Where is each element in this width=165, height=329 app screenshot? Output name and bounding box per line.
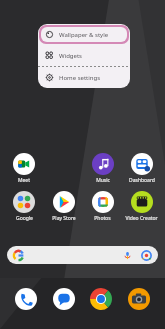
staticText: Dashboard bbox=[129, 177, 155, 184]
staticText: Wallpaper & style bbox=[59, 31, 109, 39]
button[interactable]: Dashboard bbox=[122, 153, 161, 184]
button[interactable]: Chrome bbox=[89, 287, 113, 311]
button[interactable]: Messages bbox=[52, 287, 76, 311]
button[interactable]: Wallpaper & style bbox=[38, 24, 130, 45]
button[interactable] bbox=[7, 246, 158, 264]
button[interactable]: Play Store bbox=[44, 191, 83, 222]
staticText: Video Creator bbox=[125, 215, 158, 222]
button[interactable]: Widgets bbox=[38, 45, 130, 66]
button[interactable]: Google bbox=[4, 191, 44, 222]
staticText: Widgets bbox=[59, 52, 82, 60]
staticText: Home settings bbox=[59, 74, 101, 82]
button[interactable]: Home settings bbox=[38, 67, 130, 88]
staticText: Music bbox=[96, 177, 110, 184]
button[interactable]: Photos bbox=[83, 191, 122, 222]
staticText: Photos bbox=[94, 215, 111, 222]
button[interactable]: Phone bbox=[14, 287, 38, 311]
button[interactable]: Video Creator bbox=[122, 191, 161, 222]
staticText: Meet bbox=[18, 177, 30, 184]
button[interactable]: Music bbox=[83, 153, 122, 184]
button[interactable]: Meet bbox=[4, 153, 44, 184]
staticText: Play Store bbox=[52, 215, 76, 222]
staticText: Google bbox=[16, 215, 33, 222]
button[interactable]: Camera bbox=[127, 287, 151, 311]
